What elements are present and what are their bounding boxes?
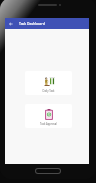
button[interactable]: Back [5,18,16,29]
staticText: Task Dashboard [19,21,45,26]
staticText: Daily Task [42,89,55,93]
button[interactable]: Daily Task [25,71,72,95]
button[interactable]: Task Approval [25,104,72,128]
staticText: Task Approval [40,122,57,126]
